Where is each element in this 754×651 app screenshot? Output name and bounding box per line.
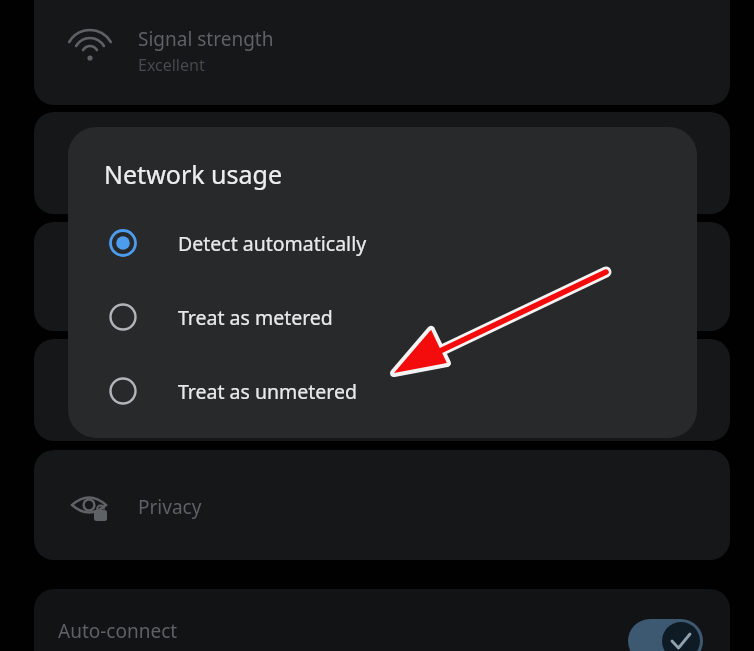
button[interactable] xyxy=(68,288,697,346)
button[interactable] xyxy=(68,362,697,420)
button[interactable] xyxy=(68,214,697,272)
other: Annotation arrow pointing to Treat as un… xyxy=(0,0,754,651)
